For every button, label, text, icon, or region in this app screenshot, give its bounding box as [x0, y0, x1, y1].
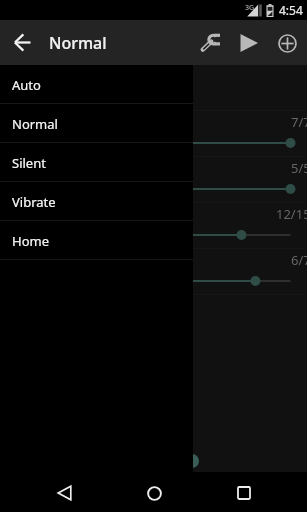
button[interactable]: 7/7 — [0, 111, 307, 157]
staticText: Vibrate — [12, 193, 56, 211]
button[interactable]: 5/5 — [0, 157, 307, 203]
button[interactable]: Home — [134, 473, 174, 512]
button[interactable]: Settings — [190, 23, 230, 63]
staticText: 5/5 — [291, 159, 307, 177]
staticText: Home — [12, 232, 49, 250]
button[interactable]: Home — [0, 221, 193, 260]
button[interactable]: Back — [6, 26, 39, 59]
button[interactable]: 6/7 — [0, 249, 307, 295]
staticText: Auto — [12, 76, 41, 94]
staticText: 3G — [245, 3, 255, 13]
staticText: Normal — [12, 115, 58, 133]
button[interactable] — [0, 65, 307, 111]
button[interactable]: Normal — [0, 104, 193, 143]
button[interactable]: Vibrate — [0, 182, 193, 221]
button[interactable]: Back — [44, 473, 84, 512]
staticText: Silent — [12, 154, 46, 172]
button[interactable]: Play — [230, 24, 268, 62]
button[interactable]: 12/15 — [0, 203, 307, 249]
staticText: 6/7 — [291, 251, 307, 269]
button[interactable]: Recent apps — [224, 473, 264, 512]
staticText: 12/15 — [276, 205, 307, 223]
button[interactable]: Silent — [0, 143, 193, 182]
staticText: Normal — [49, 32, 107, 54]
staticText: 4:54 — [279, 2, 303, 18]
button[interactable]: Auto — [0, 65, 193, 104]
button[interactable]: Add — [268, 24, 306, 62]
staticText: 7/7 — [291, 113, 307, 131]
